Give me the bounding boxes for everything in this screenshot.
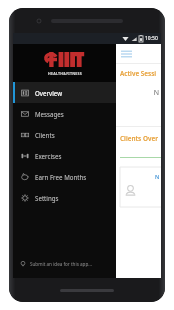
button[interactable]: Submit an idea for this app... [13,254,116,274]
button[interactable]: Overview [13,82,116,103]
staticText: Submit an idea for this app... [30,261,92,267]
staticText: Settings [35,194,59,202]
staticText: N [155,173,160,180]
staticText: Clients [35,131,55,139]
staticText: Exercises [35,152,62,160]
staticText: Earn Free Months [35,173,87,181]
button[interactable]: Earn Free Months [13,166,116,187]
staticText: Active Sessi [120,69,157,78]
staticText: Clients Over [120,134,158,143]
staticText: 10:50 [145,35,158,42]
button[interactable]: N [120,167,161,207]
button[interactable]: Open navigation drawer [121,48,132,59]
staticText: HEALTH&FITNESS [48,71,82,76]
staticText: Overview [35,89,62,97]
button[interactable]: Messages [13,103,116,124]
staticText: Messages [35,110,64,118]
button[interactable]: Settings [13,187,116,208]
staticText: N [116,88,159,98]
button[interactable]: Exercises [13,145,116,166]
button[interactable]: Clients [13,124,116,145]
